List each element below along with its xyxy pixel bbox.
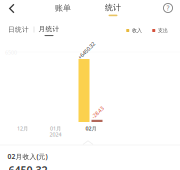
staticText: 12月 [17, 125, 28, 132]
staticText: 02月 [85, 125, 96, 132]
staticText: 日统计 [8, 25, 29, 34]
staticText: 01月 [50, 125, 61, 132]
button[interactable]: 月统计 [37, 23, 61, 37]
button[interactable]: 日统计 [6, 23, 30, 35]
staticText: 账单 [55, 3, 71, 13]
button[interactable]: 账单 [48, 0, 78, 17]
staticText: +6450.32 [75, 47, 97, 54]
staticText: 02月收入(元) [7, 152, 47, 161]
staticText: 2024 [49, 131, 61, 138]
staticText: 收入 [132, 27, 142, 34]
staticText: ? [166, 4, 169, 12]
staticText: 支出 [158, 27, 168, 34]
button[interactable]: Help [158, 0, 178, 17]
staticText: 6450.32 [8, 163, 47, 170]
button[interactable]: Back [0, 0, 24, 18]
staticText: 统计 [105, 3, 121, 13]
button[interactable]: 统计 [98, 0, 128, 19]
staticText: 6500 [5, 49, 17, 56]
staticText: -28.43 [90, 109, 105, 116]
staticText: 月统计 [38, 25, 59, 33]
